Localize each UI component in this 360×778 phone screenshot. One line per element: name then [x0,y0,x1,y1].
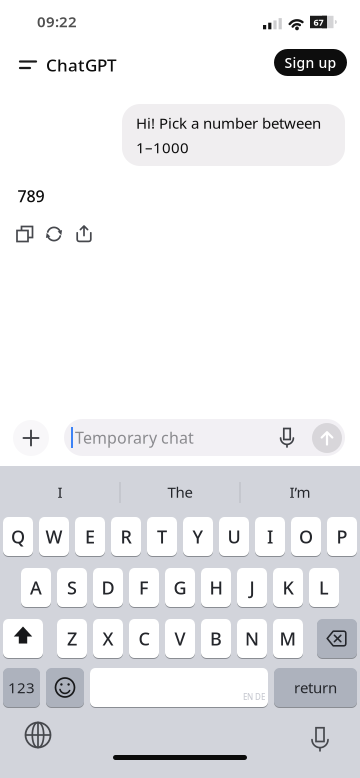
staticText: Z [67,626,77,650]
button[interactable]: R [111,517,141,556]
button[interactable]: S [57,568,87,607]
staticText: P [336,524,347,548]
staticText: Q [11,524,25,548]
button[interactable]: I [1,476,119,508]
staticText: The [167,482,192,502]
button[interactable]: T [147,517,177,556]
button[interactable]: I’m [241,476,359,508]
staticText: C [138,626,149,650]
staticText: Sign up [284,53,336,72]
button[interactable]: Delete [317,619,357,658]
button[interactable]: Emoji [46,668,84,707]
button[interactable]: C [129,619,159,658]
staticText: B [210,626,222,650]
button[interactable]: L [309,568,339,607]
staticText: U [227,524,240,548]
button[interactable]: U [219,517,249,556]
staticText: I’m [289,482,310,502]
button[interactable]: Next keyboard [23,720,53,750]
staticText: 123 [8,677,35,697]
staticText: EN DE [243,692,265,702]
staticText: H [209,575,222,599]
button[interactable]: G [165,568,195,607]
staticText: 67 [313,16,323,28]
button[interactable]: 123 [3,668,40,707]
staticText: O [299,524,313,548]
button[interactable]: Add [13,420,49,456]
button[interactable]: M [273,619,303,658]
staticText: A [30,575,42,599]
button[interactable]: V [165,619,195,658]
button[interactable]: F [129,568,159,607]
staticText: ChatGPT [46,54,117,76]
staticText: D [101,575,114,599]
button[interactable]: A [21,568,51,607]
staticText: Y [192,524,203,548]
button[interactable]: I [255,517,285,556]
staticText: R [120,524,131,548]
button[interactable]: B [201,619,231,658]
button[interactable]: X [93,619,123,658]
button[interactable]: Open sidebar [9,52,47,77]
button[interactable]: The [121,476,239,508]
button[interactable]: O [291,517,321,556]
staticText: 789 [17,185,44,207]
staticText: J [249,575,254,599]
button[interactable]: E [75,517,105,556]
button[interactable]: J [237,568,267,607]
button[interactable]: P [327,517,357,556]
staticText: F [139,575,149,599]
button[interactable]: Send [312,423,342,453]
staticText: V [174,626,185,650]
staticText: E [85,524,95,548]
staticText: G [173,575,186,599]
staticText: return [294,677,337,697]
button[interactable]: Y [183,517,213,556]
staticText: W [45,524,62,548]
button[interactable]: Sign up [274,49,347,76]
button[interactable]: Message [64,419,345,456]
staticText: I [267,524,273,548]
button[interactable]: Q [3,517,33,556]
button[interactable]: N [237,619,267,658]
button[interactable]: Dictate [306,726,334,754]
staticText: I [57,482,62,502]
button[interactable]: Z [57,619,87,658]
button[interactable]: W [39,517,69,556]
staticText: L [319,575,329,599]
button[interactable]: K [273,568,303,607]
button[interactable]: Share [70,220,98,248]
staticText: N [245,626,259,650]
staticText: Hi! Pick a number between 1–1000 [136,113,321,157]
button[interactable]: Copy [11,220,39,248]
staticText: 09:22 [37,11,77,31]
staticText: T [157,524,167,548]
staticText: K [282,575,293,599]
button[interactable]: Shift [3,619,43,658]
staticText: Temporary chat [75,427,194,448]
button[interactable]: H [201,568,231,607]
button[interactable]: Regenerate [40,220,68,248]
staticText: M [279,626,296,650]
button[interactable]: Space [90,668,268,707]
staticText: S [67,575,77,599]
staticText: X [102,626,113,650]
button[interactable]: D [93,568,123,607]
button[interactable]: return [274,668,357,707]
